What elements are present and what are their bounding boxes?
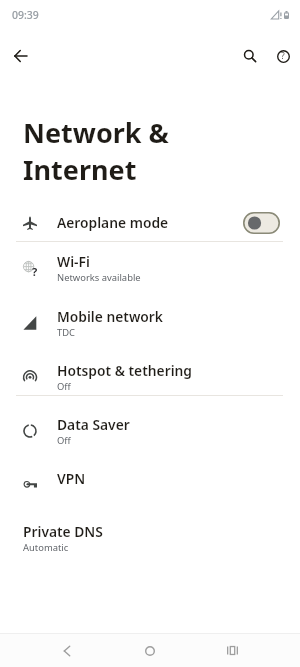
button[interactable]: Mobile network xyxy=(0,296,300,350)
button[interactable]: Aeroplane mode xyxy=(0,199,300,246)
button[interactable]: Home xyxy=(127,634,172,667)
staticText: Internet xyxy=(23,151,137,188)
button[interactable]: Search xyxy=(232,38,268,74)
button[interactable]: ? xyxy=(0,241,300,295)
staticText: Hotspot & tethering xyxy=(57,361,193,380)
staticText: Private DNS xyxy=(23,522,103,541)
staticText: Network & xyxy=(23,114,169,151)
button[interactable]: Hotspot & tethering xyxy=(0,350,300,404)
staticText: Wi-Fi xyxy=(57,252,90,271)
button[interactable]: Help xyxy=(265,38,300,74)
button[interactable]: VPN xyxy=(0,451,300,505)
staticText: ? xyxy=(32,264,38,278)
staticText: VPN xyxy=(57,469,86,488)
staticText: Mobile network xyxy=(57,307,163,326)
staticText: Networks available xyxy=(57,271,141,284)
staticText: Automatic xyxy=(23,541,69,554)
staticText: Off xyxy=(57,434,71,447)
button[interactable]: Back xyxy=(44,634,89,667)
staticText: Off xyxy=(57,380,71,393)
button[interactable]: Back xyxy=(2,38,38,74)
staticText: Aeroplane mode xyxy=(57,213,169,232)
button[interactable]: Data Saver xyxy=(0,404,300,458)
button[interactable]: Private DNS xyxy=(0,511,300,565)
staticText: ? xyxy=(281,50,285,62)
button[interactable]: Recent apps xyxy=(210,634,255,667)
staticText: Data Saver xyxy=(57,415,130,434)
staticText: TDC xyxy=(57,326,76,339)
staticText: 09:39 xyxy=(12,8,39,22)
